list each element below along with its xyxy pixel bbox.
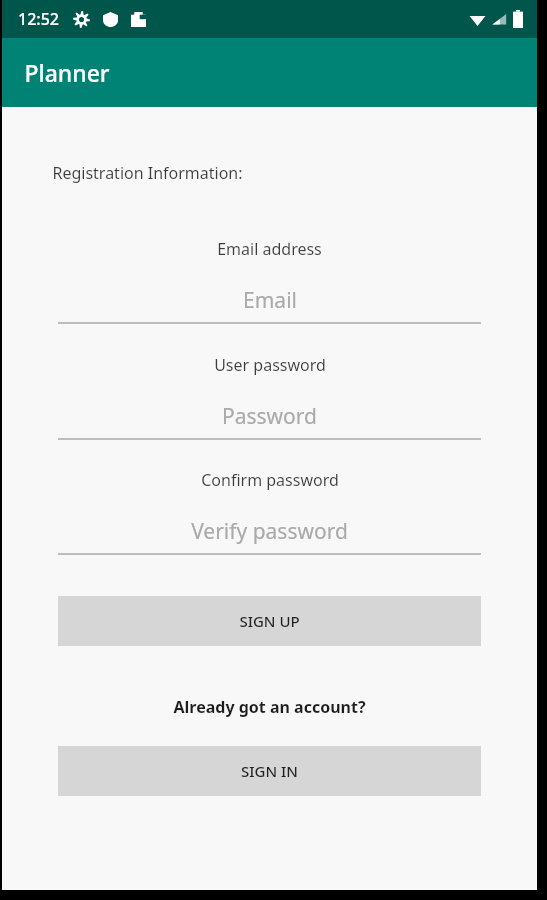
staticText: Planner bbox=[24, 57, 110, 88]
staticText: User password bbox=[214, 354, 326, 376]
staticText: Already got an account? bbox=[173, 696, 366, 718]
staticText: Email bbox=[243, 286, 297, 315]
staticText: Registration Information: bbox=[52, 162, 243, 184]
staticText: Verify password bbox=[191, 517, 348, 546]
staticText: SIGN UP bbox=[239, 611, 300, 631]
staticText: SIGN IN bbox=[241, 761, 298, 781]
button[interactable]: Email bbox=[58, 286, 481, 324]
button[interactable]: Verify password bbox=[58, 517, 481, 555]
staticText: 12:52 bbox=[18, 8, 59, 30]
button[interactable]: SIGN UP bbox=[58, 596, 481, 646]
staticText: Password bbox=[222, 402, 317, 431]
staticText: Confirm password bbox=[201, 469, 339, 491]
button[interactable]: SIGN IN bbox=[58, 746, 481, 796]
staticText: Email address bbox=[217, 238, 322, 260]
button[interactable]: Password bbox=[58, 402, 481, 440]
